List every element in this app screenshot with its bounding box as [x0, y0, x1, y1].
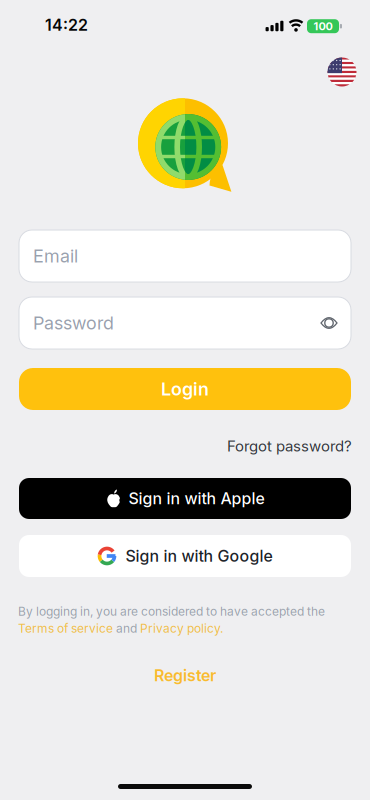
staticText: Sign in with Google	[125, 547, 272, 565]
staticText: Email	[33, 245, 78, 267]
button[interactable]: Forgot password?	[227, 437, 352, 455]
staticText: Forgot password?	[227, 437, 352, 455]
button[interactable]: Sign in with Apple	[19, 478, 351, 519]
staticText: Privacy policy.	[140, 621, 223, 636]
button[interactable]: Password	[19, 297, 351, 349]
staticText: Terms of service	[18, 621, 113, 636]
button[interactable]: Email	[19, 230, 351, 282]
staticText: Sign in with Apple	[128, 489, 264, 508]
button[interactable]: Change language	[327, 57, 356, 86]
staticText: 100	[313, 20, 332, 33]
button[interactable]: Login	[19, 368, 351, 410]
staticText: Login	[161, 378, 209, 400]
staticText: Register	[154, 666, 216, 685]
button[interactable]: Show password	[320, 315, 338, 331]
button[interactable]: Sign in with Google	[19, 535, 351, 577]
staticText: By logging in, you are considered to hav…	[18, 604, 325, 619]
staticText: and	[113, 621, 140, 636]
staticText: Password	[33, 312, 114, 334]
staticText: 14:22	[45, 16, 88, 34]
button[interactable]: Register	[154, 666, 216, 685]
button[interactable]: Privacy policy.	[140, 621, 223, 636]
button[interactable]: Terms of service	[18, 621, 113, 636]
